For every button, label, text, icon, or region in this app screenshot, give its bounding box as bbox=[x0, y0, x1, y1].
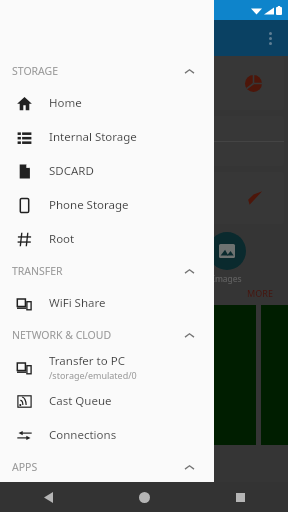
staticText: STORAGE bbox=[12, 64, 59, 78]
button[interactable]: Recents bbox=[222, 482, 258, 512]
staticText: TRANSFER bbox=[12, 264, 63, 278]
button[interactable]: Connections bbox=[0, 418, 214, 452]
staticText: Root bbox=[49, 231, 75, 247]
button[interactable]: Phone Storage bbox=[0, 188, 214, 222]
button[interactable]: STORAGE bbox=[0, 56, 214, 86]
button[interactable]: Transfer to PC bbox=[0, 350, 214, 384]
button[interactable]: Internal Storage bbox=[0, 120, 214, 154]
button[interactable]: Home bbox=[126, 482, 162, 512]
button[interactable]: More options bbox=[252, 20, 288, 56]
staticText: Home bbox=[49, 95, 82, 111]
button[interactable]: Root bbox=[0, 222, 214, 256]
button[interactable]: Apps bbox=[156, 232, 194, 270]
staticText: Images bbox=[212, 273, 242, 285]
button[interactable]: Home bbox=[0, 86, 214, 120]
staticText: Transfer to PC bbox=[49, 353, 125, 369]
staticText: APPS bbox=[12, 460, 38, 474]
button[interactable]: WiFi Share bbox=[0, 286, 214, 320]
staticText: MORE bbox=[247, 287, 274, 299]
button[interactable]: Back bbox=[30, 482, 66, 512]
button[interactable]: SDCARD bbox=[0, 154, 214, 188]
staticText: Cast Queue bbox=[49, 393, 112, 409]
staticText: /storage/emulated/0 bbox=[49, 369, 137, 381]
button[interactable]: Cast Queue bbox=[0, 384, 214, 418]
staticText: Phone Storage bbox=[49, 197, 129, 213]
button[interactable]: TRANSFER bbox=[0, 256, 214, 286]
staticText: Internal Storage bbox=[49, 129, 137, 145]
staticText: NETWORK & CLOUD bbox=[12, 328, 112, 342]
staticText: SDCARD bbox=[49, 163, 94, 179]
staticText: Connections bbox=[49, 427, 117, 443]
staticText: WiFi Share bbox=[49, 295, 106, 311]
button[interactable]: APPS bbox=[0, 452, 214, 482]
button[interactable]: NETWORK & CLOUD bbox=[0, 320, 214, 350]
button[interactable]: Images bbox=[208, 232, 246, 270]
